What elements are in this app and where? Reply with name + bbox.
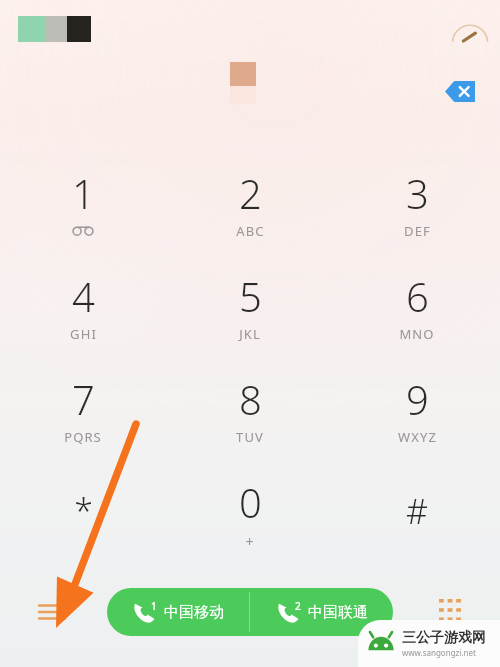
- staticText: WXYZ: [398, 428, 437, 446]
- staticText: DEF: [404, 222, 431, 240]
- button[interactable]: 1: [23, 155, 143, 251]
- staticText: *: [74, 488, 93, 534]
- button[interactable]: 1: [107, 588, 249, 636]
- button[interactable]: Delete: [440, 75, 480, 107]
- button[interactable]: 7: [23, 361, 143, 457]
- staticText: 3: [406, 166, 429, 220]
- staticText: 8: [239, 372, 262, 426]
- staticText: 中国移动: [164, 603, 224, 622]
- staticText: 4: [72, 269, 95, 323]
- button[interactable]: 2: [250, 588, 393, 636]
- button[interactable]: 0: [190, 464, 310, 560]
- button[interactable]: 3: [357, 155, 477, 251]
- staticText: 6: [406, 269, 429, 323]
- button[interactable]: 2: [190, 155, 310, 251]
- button[interactable]: Dial pad: [428, 590, 472, 630]
- button[interactable]: 4: [23, 258, 143, 354]
- staticText: PQRS: [64, 428, 102, 446]
- staticText: 三公子游戏网: [402, 629, 486, 647]
- staticText: 1: [72, 166, 95, 220]
- button[interactable]: *: [23, 464, 143, 560]
- staticText: 5: [239, 269, 262, 323]
- staticText: #: [406, 488, 428, 534]
- staticText: 7: [72, 372, 95, 426]
- staticText: 0: [239, 475, 262, 529]
- staticText: +: [245, 531, 255, 551]
- staticText: 2: [239, 166, 262, 220]
- button[interactable]: 8: [190, 361, 310, 457]
- button[interactable]: 6: [357, 258, 477, 354]
- staticText: 1: [151, 599, 157, 613]
- staticText: 中国联通: [308, 603, 368, 622]
- button[interactable]: Call history: [448, 14, 494, 54]
- button[interactable]: #: [357, 464, 477, 560]
- staticText: JKL: [239, 325, 261, 343]
- staticText: www.sangongzi.net: [402, 647, 476, 658]
- staticText: MNO: [399, 325, 435, 343]
- staticText: TUV: [236, 428, 264, 446]
- staticText: GHI: [70, 325, 97, 343]
- staticText: 9: [406, 372, 429, 426]
- button[interactable]: 5: [190, 258, 310, 354]
- button[interactable]: Menu: [30, 592, 74, 632]
- button[interactable]: 9: [357, 361, 477, 457]
- staticText: 2: [295, 599, 301, 613]
- staticText: ABC: [236, 222, 265, 240]
